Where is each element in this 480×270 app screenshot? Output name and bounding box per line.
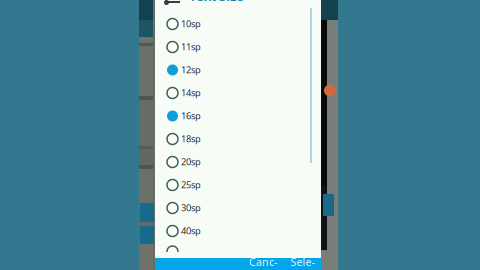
button[interactable]: 25sp (161, 173, 315, 196)
button[interactable]: Cancel (248, 263, 278, 270)
button[interactable]: 40sp (161, 219, 315, 242)
staticText: 14sp (181, 86, 201, 99)
staticText: Select (290, 255, 314, 270)
button[interactable]: Select (289, 263, 316, 270)
button[interactable]: 12sp (161, 58, 315, 81)
staticText: 12sp (181, 63, 201, 76)
button[interactable]: 30sp (161, 196, 315, 219)
button[interactable]: 18sp (161, 127, 315, 150)
button[interactable]: 14sp (161, 81, 315, 104)
staticText: 16sp (181, 109, 201, 122)
button[interactable]: 20sp (161, 150, 315, 173)
button[interactable]: 16sp (161, 104, 315, 127)
staticText: Text Size (189, 0, 244, 5)
staticText: 25sp (181, 178, 201, 191)
staticText: 10sp (181, 17, 201, 30)
button[interactable]: 10sp (161, 12, 315, 35)
staticText: 40sp (181, 224, 201, 237)
staticText: 18sp (181, 132, 201, 145)
staticText: 11sp (181, 40, 201, 53)
staticText: Cancel (249, 255, 277, 270)
button[interactable]: 11sp (161, 35, 315, 58)
staticText: 30sp (181, 201, 201, 214)
staticText: 20sp (181, 155, 201, 168)
